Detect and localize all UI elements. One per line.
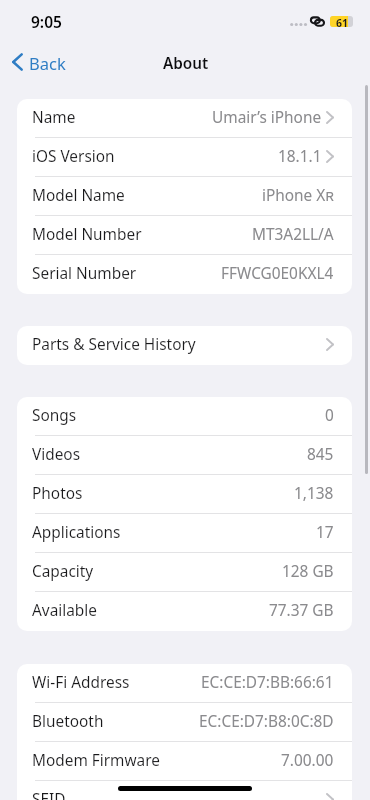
button[interactable]: Bluetooth <box>17 703 352 742</box>
button[interactable]: Photos <box>17 475 352 514</box>
staticText: Parts & Service History <box>32 334 196 355</box>
button[interactable]: Model Name <box>17 177 352 216</box>
staticText: About <box>163 53 209 74</box>
other: Signal strength <box>290 22 308 27</box>
staticText: 77.37 GB <box>269 600 334 621</box>
staticText: 7.00.00 <box>281 750 334 771</box>
button[interactable]: Wi-Fi Address <box>17 664 352 703</box>
button[interactable]: Back <box>6 45 74 79</box>
staticText: Name <box>32 107 76 128</box>
staticText: iPhone Xʀ <box>262 185 334 206</box>
staticText: Songs <box>32 405 77 426</box>
staticText: Back <box>29 52 66 74</box>
staticText: iOS Version <box>32 146 115 167</box>
staticText: Model Name <box>32 185 125 206</box>
staticText: 845 <box>307 444 334 465</box>
staticText: Capacity <box>32 561 94 582</box>
button[interactable]: Name <box>17 99 352 138</box>
button[interactable]: Modem Firmware <box>17 742 352 781</box>
staticText: Umair’s iPhone <box>212 107 322 128</box>
staticText: 9:05 <box>31 11 62 32</box>
button[interactable]: Model Number <box>17 216 352 255</box>
staticText: Bluetooth <box>32 711 104 732</box>
button[interactable]: Videos <box>17 436 352 475</box>
staticText: Serial Number <box>32 263 137 284</box>
staticText: Available <box>32 600 97 621</box>
staticText: Videos <box>32 444 81 465</box>
button[interactable]: Available <box>17 592 352 631</box>
staticText: EC:CE:D7:BB:66:61 <box>201 672 334 693</box>
staticText: Photos <box>32 483 83 504</box>
staticText: Modem Firmware <box>32 750 160 771</box>
button[interactable]: Serial Number <box>17 255 352 294</box>
staticText: SEID <box>32 789 66 800</box>
staticText: MT3A2LL/A <box>252 224 334 245</box>
button[interactable]: Songs <box>17 397 352 436</box>
other: Battery 61 percent <box>330 16 353 27</box>
staticText: EC:CE:D7:B8:0C:8D <box>199 711 334 732</box>
staticText: 17 <box>316 522 334 543</box>
other: Link active <box>310 16 327 28</box>
staticText: 18.1.1 <box>278 146 322 167</box>
staticText: 0 <box>325 405 334 426</box>
button[interactable]: Parts & Service History <box>17 326 352 365</box>
button[interactable]: SEID <box>17 781 352 800</box>
staticText: FFWCG0E0KXL4 <box>221 263 334 284</box>
staticText: 128 GB <box>282 561 334 582</box>
button[interactable]: iOS Version <box>17 138 352 177</box>
staticText: 61 <box>336 16 349 27</box>
staticText: Applications <box>32 522 121 543</box>
button[interactable]: Capacity <box>17 553 352 592</box>
button[interactable]: Applications <box>17 514 352 553</box>
staticText: Model Number <box>32 224 142 245</box>
staticText: Wi-Fi Address <box>32 672 130 693</box>
staticText: 1,138 <box>294 483 334 504</box>
